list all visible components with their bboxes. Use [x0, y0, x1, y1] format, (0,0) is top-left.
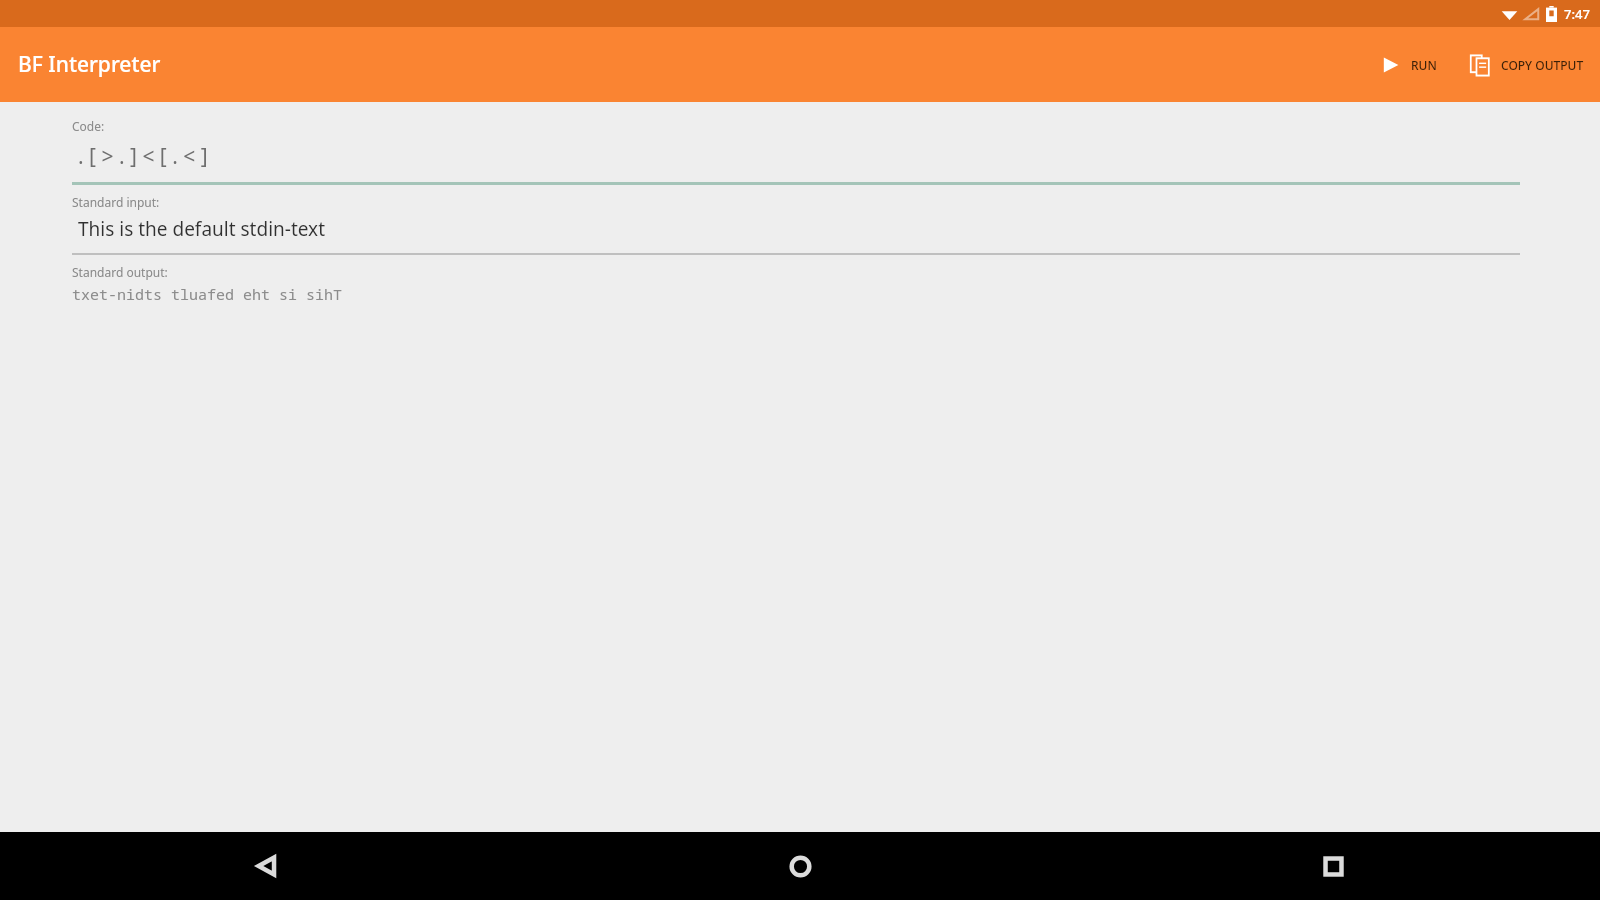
staticText: Standard output:	[72, 264, 168, 280]
staticText: COPY OUTPUT	[1501, 57, 1584, 73]
button[interactable]: Recent apps	[1067, 832, 1600, 900]
staticText: This is the default stdin-text	[78, 216, 326, 242]
button[interactable]: . [ > . ] < [ . < ]	[72, 142, 1520, 185]
staticText: 7:47	[1564, 5, 1590, 23]
button[interactable]: This is the default stdin-text	[72, 216, 1520, 255]
button[interactable]: Copy output	[1461, 41, 1592, 89]
staticText: BF Interpreter	[18, 50, 161, 79]
button[interactable]: Back	[0, 832, 534, 900]
button[interactable]: Home	[534, 832, 1067, 900]
staticText: Code:	[72, 118, 105, 134]
staticText: . [ > . ] < [ . < ]	[78, 142, 208, 171]
staticText: txet-nidts tluafed eht si sihT	[72, 284, 343, 304]
staticText: RUN	[1411, 57, 1437, 73]
button[interactable]: RUN	[1369, 42, 1447, 88]
staticText: Standard input:	[72, 194, 160, 210]
